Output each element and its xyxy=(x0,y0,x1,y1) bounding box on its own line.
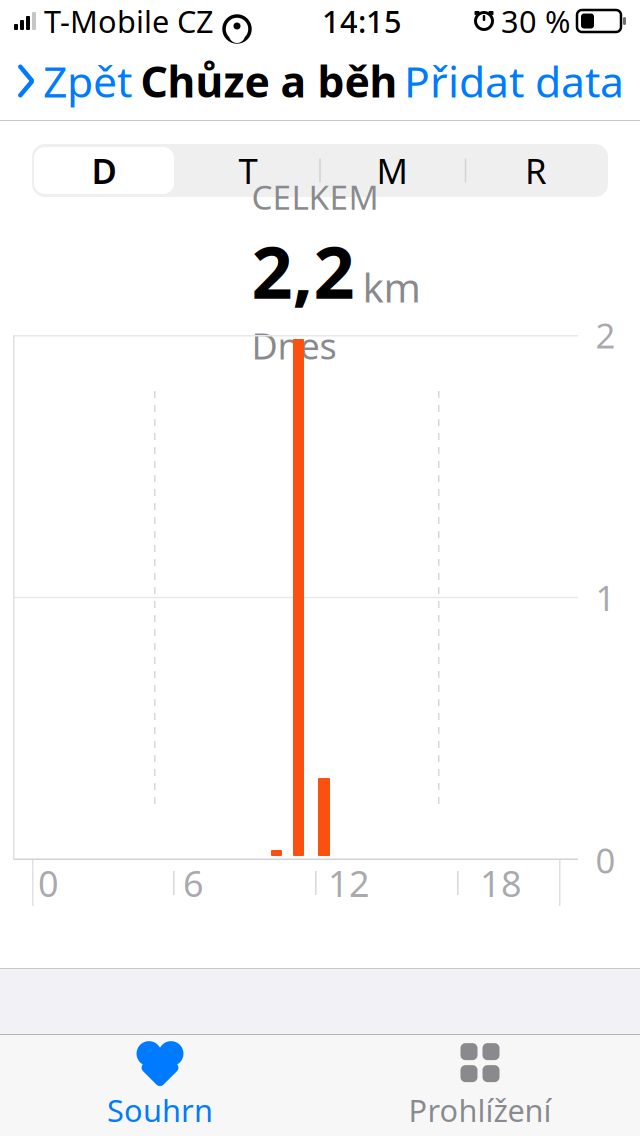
staticText: 6 xyxy=(183,859,204,907)
staticText: M xyxy=(376,147,407,193)
button[interactable]: Prohlížení xyxy=(320,1035,640,1136)
button[interactable]: Přidat data xyxy=(398,42,640,120)
staticText: R xyxy=(525,147,547,193)
staticText: Přidat data xyxy=(404,53,624,109)
button[interactable]: D xyxy=(32,144,176,197)
staticText: T xyxy=(238,147,257,193)
button[interactable]: Souhrn xyxy=(0,1035,320,1136)
staticText: 1 xyxy=(595,574,615,620)
staticText: Chůze a běh xyxy=(140,53,397,109)
staticText: CELKEM xyxy=(251,175,378,219)
staticText: Souhrn xyxy=(107,1090,213,1130)
staticText: Prohlížení xyxy=(408,1090,551,1130)
staticText: 18 xyxy=(480,859,522,907)
staticText: D xyxy=(91,147,116,193)
staticText: 0 xyxy=(38,859,59,907)
staticText: 0 xyxy=(595,837,615,883)
staticText: T-Mobile CZ xyxy=(44,1,214,41)
button[interactable]: R xyxy=(464,144,608,197)
button[interactable]: M xyxy=(320,144,464,197)
staticText: Dnes xyxy=(251,321,336,369)
staticText: 2,2 xyxy=(251,223,354,318)
staticText: 30 % xyxy=(501,1,570,41)
button[interactable]: T xyxy=(176,144,320,197)
staticText: Zpět xyxy=(43,53,132,109)
staticText: 2 xyxy=(595,312,615,358)
staticText: 12 xyxy=(328,859,370,907)
button[interactable]: Zpět xyxy=(0,42,140,120)
staticText: km xyxy=(362,260,420,313)
staticText: 14:15 xyxy=(322,1,402,41)
